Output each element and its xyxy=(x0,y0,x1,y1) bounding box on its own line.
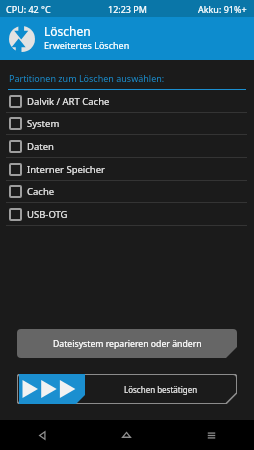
staticText: Löschen bestätigen xyxy=(124,384,198,395)
button[interactable]: Dateisystem reparieren oder ändern xyxy=(17,329,237,358)
button[interactable]: Home xyxy=(84,420,169,450)
staticText: Dalvik / ART Cache xyxy=(27,95,110,108)
staticText: Interner Speicher xyxy=(27,163,106,176)
staticText: Daten xyxy=(27,140,54,153)
staticText: 12:23 PM xyxy=(108,3,147,15)
button[interactable]: Cache xyxy=(0,181,254,202)
button[interactable]: Löschen xyxy=(0,17,254,60)
staticText: Löschen xyxy=(44,23,91,39)
button[interactable]: USB-OTG xyxy=(0,203,254,225)
staticText: Akku: 91%+ xyxy=(198,3,247,15)
staticText: USB-OTG xyxy=(27,208,68,221)
button[interactable]: Recent apps xyxy=(169,420,254,450)
button[interactable]: Daten xyxy=(0,135,254,157)
button[interactable]: System xyxy=(0,113,254,134)
staticText: Dateisystem reparieren oder ändern xyxy=(53,338,202,350)
button[interactable]: Löschen bestätigen xyxy=(17,374,237,404)
button[interactable]: Dalvik / ART Cache xyxy=(0,90,254,112)
staticText: System xyxy=(27,117,60,130)
button[interactable]: Interner Speicher xyxy=(0,158,254,180)
staticText: Erweitertes Löschen xyxy=(44,39,130,51)
button[interactable]: Back xyxy=(0,420,84,450)
staticText: Cache xyxy=(27,185,55,198)
staticText: CPU: 42 °C xyxy=(6,3,51,15)
staticText: Partitionen zum Löschen auswählen: xyxy=(9,72,165,84)
